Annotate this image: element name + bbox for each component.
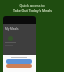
button[interactable]: View menu [6,64,32,68]
button[interactable]: Order now [6,59,32,64]
button[interactable]: Meal summary [8,36,13,41]
staticText: Take Out Today's Meals [13,8,52,13]
staticText: My Meals [5,27,19,31]
staticText: Quick access to [19,3,45,8]
